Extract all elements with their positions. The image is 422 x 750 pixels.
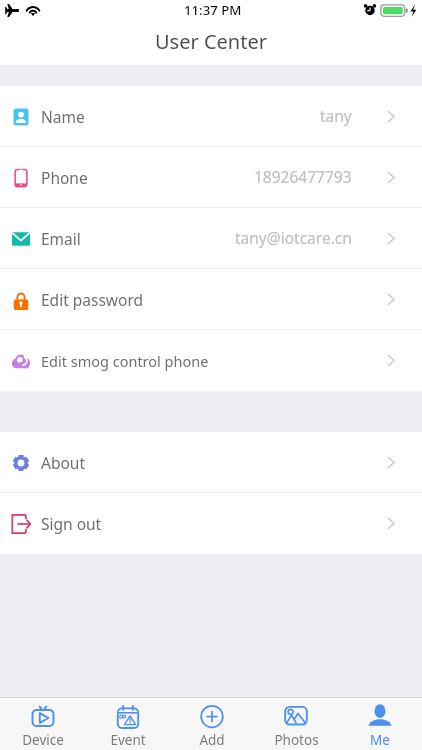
button[interactable]: About xyxy=(0,432,422,493)
staticText: Edit smog control phone xyxy=(41,351,209,371)
staticText: Sign out xyxy=(41,513,102,534)
staticText: Device xyxy=(22,731,64,749)
button[interactable]: Event xyxy=(85,698,170,750)
button[interactable]: Sign out xyxy=(0,493,422,554)
staticText: 18926477793 xyxy=(254,166,352,187)
staticText: 11:37 PM xyxy=(184,1,242,19)
staticText: Photos xyxy=(274,731,319,749)
button[interactable]: Me xyxy=(338,698,422,750)
button[interactable]: Edit smog control phone xyxy=(0,330,422,391)
button[interactable]: Edit password xyxy=(0,269,422,330)
staticText: Add xyxy=(199,731,225,749)
staticText: tany xyxy=(320,105,352,126)
button[interactable]: Phone xyxy=(0,147,422,208)
staticText: Email xyxy=(41,228,81,249)
staticText: Name xyxy=(41,106,85,127)
button[interactable]: Name xyxy=(0,86,422,147)
staticText: Event xyxy=(110,731,146,749)
staticText: Edit password xyxy=(41,289,144,310)
staticText: About xyxy=(41,452,85,473)
button[interactable]: Photos xyxy=(254,698,338,750)
staticText: Me xyxy=(370,731,390,749)
staticText: User Center xyxy=(155,28,267,55)
button[interactable]: Add xyxy=(170,698,254,750)
staticText: tany@iotcare.cn xyxy=(235,227,352,248)
staticText: Phone xyxy=(41,167,88,188)
button[interactable]: Email xyxy=(0,208,422,269)
button[interactable]: Device xyxy=(0,698,85,750)
